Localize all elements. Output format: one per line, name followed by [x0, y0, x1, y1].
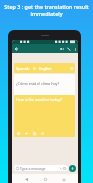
staticText: ¿Cómo está el clima hoy? [16, 81, 60, 86]
button[interactable]: Spanish [14, 63, 75, 73]
staticText: Spanish [16, 66, 30, 71]
staticText: immediately [30, 10, 63, 17]
staticText: How is the weather today? [16, 97, 62, 102]
button[interactable]: Share [40, 131, 44, 135]
button[interactable]: Translate [16, 131, 20, 135]
button[interactable]: Speak [24, 131, 28, 135]
button[interactable]: Home [42, 176, 49, 183]
button[interactable]: More options [72, 46, 78, 52]
staticText: Step 3 : get the translation result [4, 3, 89, 10]
button[interactable]: ¿Cómo está el clima hoy? [14, 74, 75, 95]
button[interactable]: Type a message [14, 165, 68, 171]
button[interactable]: Back [12, 45, 19, 52]
button[interactable]: Recent apps [60, 176, 67, 183]
button[interactable]: Back [23, 176, 30, 183]
staticText: Type a message [20, 166, 46, 171]
button[interactable]: Video call [58, 45, 65, 52]
button[interactable]: Call [65, 45, 72, 52]
button[interactable]: Copy [32, 131, 36, 135]
staticText: English [39, 66, 52, 71]
button[interactable]: Voice message [69, 165, 76, 172]
